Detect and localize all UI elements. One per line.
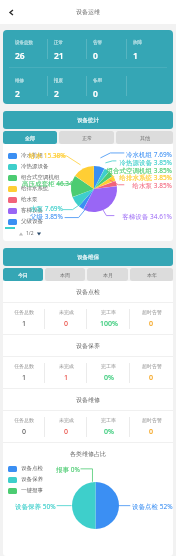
button[interactable]: 组合式空调机组 <box>8 172 60 183</box>
staticText: 未完成 <box>59 417 74 423</box>
staticText: 一键报事 <box>21 487 43 494</box>
button[interactable]: 其他 <box>116 131 173 144</box>
staticText: 2 <box>15 88 20 100</box>
staticText: 1 <box>22 373 27 383</box>
staticText: 0 <box>149 373 154 383</box>
staticText: 各类维修占比 <box>70 450 106 458</box>
staticText: 0 <box>64 319 69 329</box>
staticText: 超时告警 <box>142 309 162 315</box>
staticText: 故障 <box>133 40 142 46</box>
staticText: 21 <box>54 50 64 62</box>
staticText: 给水 15.38% <box>29 151 66 160</box>
staticText: 设备统计 <box>77 117 99 124</box>
staticText: 冷水机组 <box>21 152 43 159</box>
staticText: 高压成套柜 46.34% <box>22 179 79 188</box>
staticText: 完工率 <box>101 309 116 315</box>
staticText: 水泵 7.69% <box>30 204 63 213</box>
staticText: 0% <box>104 427 114 437</box>
staticText: 父级设备 <box>21 218 43 225</box>
staticText: 0 <box>93 50 98 62</box>
staticText: 设备保养 50% <box>15 502 56 511</box>
button[interactable]: Back <box>0 0 22 24</box>
staticText: 0 <box>64 427 69 437</box>
button[interactable]: 设备统计 <box>3 111 173 129</box>
staticText: 0 <box>22 427 27 437</box>
staticText: 冷热源设备 <box>21 163 49 170</box>
staticText: 任务总数 <box>14 309 34 315</box>
staticText: 正常 <box>82 135 92 141</box>
staticText: 设备保养 <box>21 476 43 483</box>
staticText: 0 <box>93 88 98 100</box>
button[interactable]: 本年 <box>130 268 173 281</box>
button[interactable]: 今日 <box>3 268 43 281</box>
staticText: 全部 <box>25 135 35 141</box>
button[interactable]: 父级设备 <box>8 216 43 227</box>
staticText: 其他 <box>140 135 150 141</box>
button[interactable]: 全部 <box>3 131 57 144</box>
staticText: 冷水机组 7.69% <box>126 150 172 159</box>
staticText: 1/2 <box>26 230 34 237</box>
staticText: 本年 <box>147 272 157 278</box>
staticText: 正常 <box>54 40 63 46</box>
staticText: 给水泵 3.85% <box>132 181 172 190</box>
staticText: 设备维修 <box>76 396 100 404</box>
staticText: 任务总数 <box>14 417 34 423</box>
staticText: 客梯设备 <box>21 207 43 214</box>
staticText: 完工率 <box>101 363 116 369</box>
staticText: 未完成 <box>59 363 74 369</box>
button[interactable]: 一键报事 <box>8 485 43 496</box>
staticText: 今日 <box>18 272 28 278</box>
staticText: 1 <box>133 50 138 62</box>
button[interactable]: 正常 <box>59 131 114 144</box>
staticText: 告警 <box>93 40 102 46</box>
staticText: 设备点检 <box>21 465 43 472</box>
staticText: 本月 <box>103 272 113 278</box>
button[interactable]: 给水泵 <box>8 194 38 205</box>
staticText: 父级 3.85% <box>30 212 63 221</box>
staticText: 本周 <box>60 272 70 278</box>
staticText: 任务总数 <box>14 363 34 369</box>
staticText: 2 <box>54 88 59 100</box>
staticText: 报废 <box>54 78 63 84</box>
button[interactable]: 冷热源设备 <box>8 161 49 172</box>
button[interactable]: 本周 <box>45 268 85 281</box>
staticText: 完工率 <box>101 417 116 423</box>
staticText: 0 <box>149 427 154 437</box>
staticText: 报事 0% <box>56 465 80 474</box>
button[interactable]: 给排水系统 <box>8 183 49 194</box>
button[interactable]: 设备维保 <box>3 248 173 266</box>
staticText: 设备保养 <box>76 342 100 350</box>
staticText: 维修 <box>15 78 24 84</box>
staticText: 100% <box>100 319 118 329</box>
button[interactable]: 设备点检 <box>8 463 43 474</box>
staticText: 未完成 <box>59 309 74 315</box>
staticText: 超时告警 <box>142 363 162 369</box>
staticText: 客梯设备 34.61% <box>122 212 172 221</box>
staticText: 0 <box>149 319 154 329</box>
staticText: 1 <box>64 373 69 383</box>
staticText: 设备运维 <box>76 8 100 16</box>
staticText: 组合式空调机组 3.85% <box>106 166 172 175</box>
staticText: 26 <box>15 50 25 62</box>
staticText: 给排水系统 3.85% <box>119 173 172 182</box>
staticText: 设备总数 <box>15 40 33 46</box>
button[interactable]: 客梯设备 <box>8 205 43 216</box>
staticText: 1 <box>22 319 27 329</box>
staticText: 设备点检 <box>76 288 100 296</box>
staticText: 给水泵 <box>21 196 38 203</box>
staticText: 备用 <box>93 78 102 84</box>
staticText: 组合式空调机组 <box>21 174 60 181</box>
button[interactable]: 本月 <box>87 268 128 281</box>
staticText: 冷热源设备 3.85% <box>119 158 172 167</box>
staticText: 给排水系统 <box>21 185 49 192</box>
staticText: 超时告警 <box>142 417 162 423</box>
staticText: 设备点检 52% <box>132 502 173 511</box>
button[interactable]: 冷水机组 <box>8 150 43 161</box>
button[interactable]: 设备保养 <box>8 474 43 485</box>
staticText: 设备维保 <box>77 254 99 261</box>
staticText: 0% <box>104 373 114 383</box>
